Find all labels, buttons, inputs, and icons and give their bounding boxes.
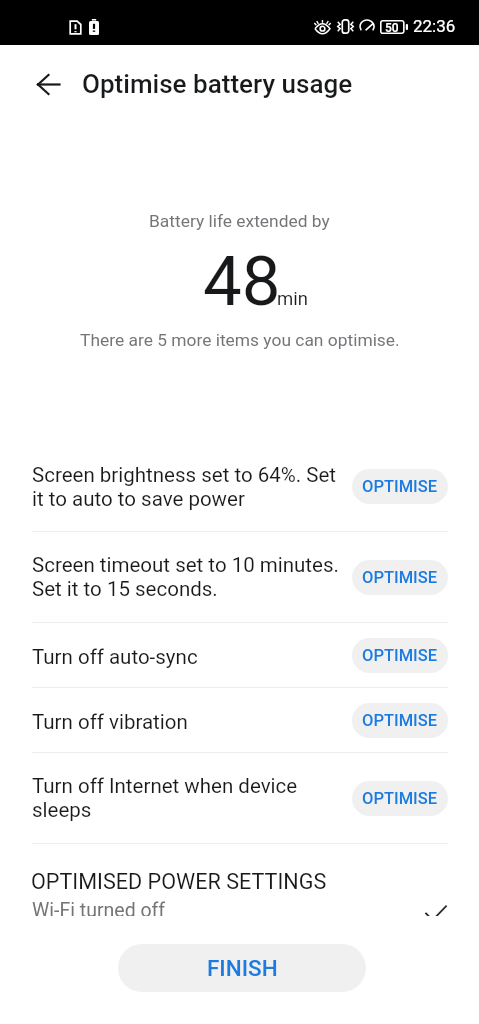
button[interactable]: Back [25,61,71,107]
button[interactable]: Screen timeout set to 10 minutes. Set it… [0,532,479,622]
staticText: OPTIMISED POWER SETTINGS [31,869,327,894]
staticText: OPTIMISE [362,711,438,730]
staticText: There are 5 more items you can optimise. [80,330,400,350]
staticText: 50 [385,21,399,35]
button[interactable]: OPTIMISE [352,469,448,504]
button[interactable]: OPTIMISE [352,703,448,738]
button[interactable]: FINISH [118,944,366,992]
staticText: Turn off auto-sync [32,645,346,669]
button[interactable]: OPTIMISE [352,781,448,816]
staticText: Screen brightness set to 64%. Set it to … [32,463,346,511]
staticText: 48 [203,241,281,322]
staticText: min [277,288,308,310]
button[interactable]: OPTIMISE [352,560,448,595]
staticText: OPTIMISE [362,646,438,665]
button[interactable]: Wi-Fi turned off [0,884,479,936]
button[interactable]: Turn off Internet when device sleeps [0,753,479,843]
staticText: Turn off Internet when device sleeps [32,774,346,822]
staticText: 22:36 [413,16,456,36]
staticText: OPTIMISE [362,568,438,587]
button[interactable]: OPTIMISE [352,638,448,673]
staticText: Wi-Fi turned off [32,899,166,922]
staticText: Optimise battery usage [82,69,353,99]
staticText: Turn off vibration [32,710,346,734]
button[interactable]: Turn off auto-sync [0,623,479,687]
staticText: Battery life extended by [149,211,330,231]
staticText: Screen timeout set to 10 minutes. Set it… [32,553,346,601]
button[interactable]: Screen brightness set to 64%. Set it to … [0,442,479,531]
staticText: FINISH [207,955,278,981]
staticText: OPTIMISE [362,477,438,496]
staticText: OPTIMISE [362,789,438,808]
button[interactable]: Turn off vibration [0,688,479,752]
